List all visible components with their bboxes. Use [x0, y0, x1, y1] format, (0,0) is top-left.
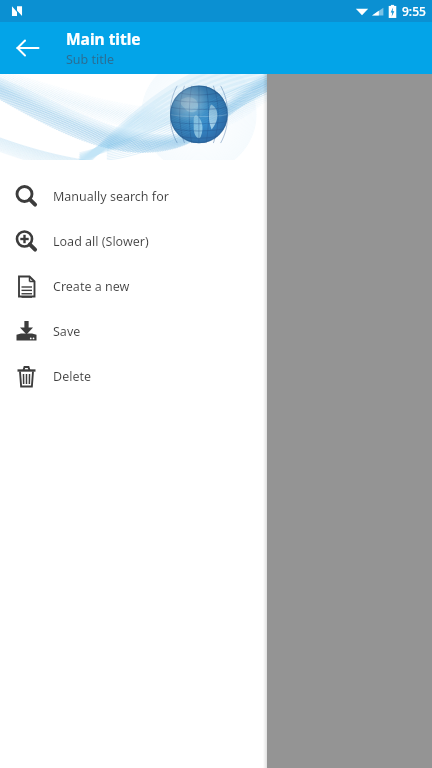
staticText: 9:55	[402, 3, 426, 19]
button[interactable]: Load all (Slower)	[0, 219, 267, 264]
button[interactable]: Back	[4, 24, 52, 72]
button[interactable]: Save	[0, 309, 267, 354]
staticText: Create a new	[53, 278, 130, 295]
staticText: Delete	[53, 368, 92, 385]
button[interactable]: Create a new	[0, 264, 267, 309]
button[interactable]: Delete	[0, 354, 267, 399]
button[interactable]	[0, 74, 432, 768]
staticText: Main title	[66, 28, 141, 49]
button[interactable]: Manually search for	[0, 174, 267, 219]
staticText: Manually search for	[53, 188, 169, 205]
staticText: Save	[53, 323, 81, 340]
staticText: Sub title	[66, 51, 115, 68]
staticText: Load all (Slower)	[53, 233, 149, 250]
